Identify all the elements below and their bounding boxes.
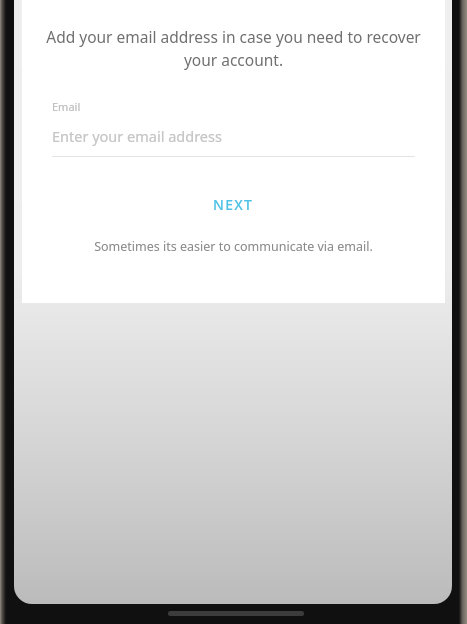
staticText: NEXT <box>213 195 254 214</box>
staticText: Email <box>52 99 81 114</box>
staticText: Add your email address in case you need … <box>39 26 428 71</box>
staticText: Sometimes its easier to communicate via … <box>22 238 445 255</box>
staticText: Enter your email address <box>52 126 222 146</box>
button[interactable]: NEXT <box>195 188 272 221</box>
button[interactable]: Enter your email address <box>52 123 415 149</box>
